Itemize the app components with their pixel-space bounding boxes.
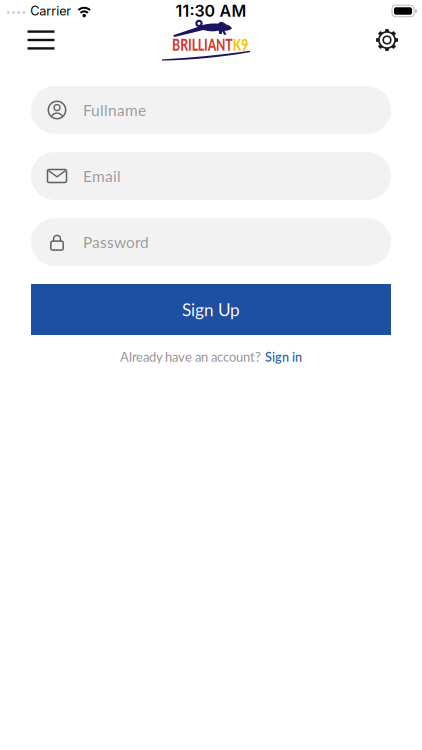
staticText: Already have an account? <box>120 349 261 365</box>
button[interactable]: Menu <box>24 23 58 57</box>
staticText: Sign in <box>265 349 302 364</box>
button[interactable]: Password <box>31 218 391 266</box>
staticText: 11:30 AM <box>175 1 246 21</box>
button[interactable]: Sign Up <box>31 284 391 335</box>
staticText: Carrier <box>30 3 71 19</box>
button[interactable]: Sign in <box>265 349 302 364</box>
button[interactable]: Settings <box>370 23 404 57</box>
staticText: BRILLIANT <box>160 35 240 54</box>
staticText: Password <box>83 233 149 251</box>
staticText: Fullname <box>83 101 146 119</box>
button[interactable]: Fullname <box>31 86 391 134</box>
staticText: K9 <box>240 35 260 54</box>
staticText: Sign Up <box>182 299 240 320</box>
button[interactable]: Email <box>31 152 391 200</box>
staticText: Email <box>83 167 121 185</box>
